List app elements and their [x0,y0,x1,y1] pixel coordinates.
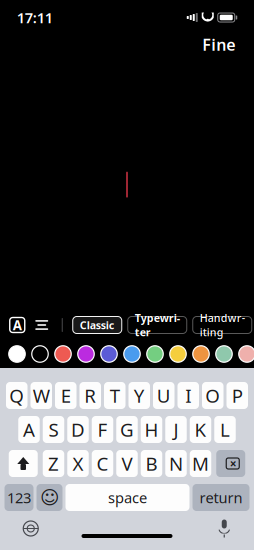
button[interactable]: Typewriter [125,311,190,338]
button[interactable]: Colour 10 [216,346,232,362]
button[interactable]: Text background [6,312,29,337]
button[interactable]: M [190,450,211,477]
button[interactable]: E [55,382,76,409]
button[interactable]: Colour 1 [9,346,25,362]
staticText: Q [9,383,24,408]
staticText: V [121,451,132,476]
staticText: J [173,417,178,442]
button[interactable]: Y [128,382,150,409]
button[interactable]: L [214,416,236,443]
button[interactable]: T [104,382,125,409]
button[interactable]: Alignment [29,312,55,337]
staticText: space [108,488,147,507]
button[interactable]: space [65,484,189,511]
button[interactable]: Handwriting [190,311,254,338]
staticText: Z [48,451,59,476]
button[interactable]: D [67,416,89,443]
button[interactable]: Colour 6 [124,346,140,362]
button[interactable]: Colour 5 [101,346,117,362]
button[interactable]: S [43,416,64,443]
staticText: S [48,417,58,442]
staticText: A [23,417,35,442]
button[interactable]: U [153,382,174,409]
button[interactable]: Z [43,450,64,477]
staticText: D [71,417,85,442]
staticText: B [145,451,157,476]
button[interactable]: J [165,416,187,443]
button[interactable]: W [30,382,52,409]
button[interactable]: F [92,416,113,443]
staticText: F [97,417,107,442]
button[interactable]: Shift [9,450,38,477]
staticText: G [120,417,134,442]
button[interactable]: Delete [216,450,245,477]
button[interactable]: Colour 7 [147,346,163,362]
button[interactable]: N [165,450,187,477]
button[interactable]: A [18,416,40,443]
staticText: H [144,417,158,442]
button[interactable]: R [79,382,101,409]
button[interactable]: Colour 4 [78,346,94,362]
staticText: ☺ [40,487,59,508]
staticText: X [72,451,83,476]
staticText: × [230,455,237,471]
button[interactable]: Q [6,382,27,409]
button[interactable]: O [202,382,223,409]
staticText: P [232,383,243,408]
staticText: 17:11 [17,8,53,27]
button[interactable]: Dictate [209,514,239,543]
button[interactable]: Fine [196,30,241,59]
staticText: N [169,451,183,476]
staticText: Handwriting [200,311,245,339]
button[interactable]: G [116,416,138,443]
staticText: Y [134,383,145,408]
button[interactable]: X [67,450,89,477]
button[interactable]: Emoji [36,484,62,511]
staticText: L [220,417,230,442]
staticText: A [13,316,22,334]
staticText: M [192,451,209,476]
button[interactable]: Colour 9 [193,346,209,362]
staticText: R [84,383,96,408]
button[interactable]: Next keyboard [15,514,47,542]
staticText: U [157,383,171,408]
button[interactable]: K [190,416,211,443]
staticText: Fine [202,34,235,55]
staticText: return [199,488,242,507]
staticText: O [205,383,220,408]
button[interactable]: C [92,450,113,477]
button[interactable]: 123 [4,484,33,511]
button[interactable]: Classic [70,311,125,338]
button[interactable]: Colour 2 [32,346,48,362]
staticText: Typewriter [135,311,180,339]
button[interactable]: return [192,484,249,511]
staticText: E [61,383,71,408]
staticText: 123 [7,488,31,507]
staticText: I [185,383,191,408]
staticText: C [96,451,108,476]
staticText: T [110,383,120,408]
button[interactable]: Colour 8 [170,346,186,362]
button[interactable]: Colour 11 [239,346,254,362]
button[interactable]: Colour 3 [55,346,71,362]
button[interactable]: B [141,450,162,477]
button[interactable]: V [116,450,138,477]
staticText: W [33,383,50,408]
button[interactable]: H [141,416,162,443]
button[interactable]: P [226,382,248,409]
staticText: Classic [80,318,115,332]
button[interactable]: I [177,382,199,409]
staticText: K [194,417,206,442]
